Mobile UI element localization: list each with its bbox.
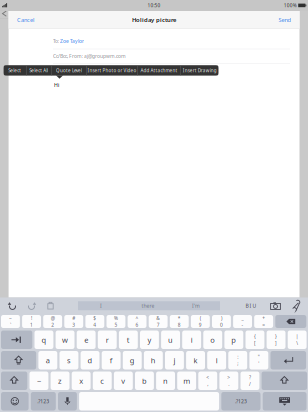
button[interactable]: !	[22, 315, 41, 328]
button[interactable]: r	[98, 330, 117, 349]
button[interactable]: .?123	[221, 392, 260, 410]
button[interactable]: %	[106, 315, 125, 328]
staticText: _	[241, 315, 243, 321]
staticText: Insert Drawing	[183, 67, 217, 73]
button[interactable]: Cancel	[12, 11, 40, 28]
button[interactable]: n	[156, 371, 175, 390]
button[interactable]: I	[78, 301, 124, 310]
button[interactable]	[270, 351, 306, 369]
staticText: ;	[237, 360, 238, 367]
button[interactable]: k	[186, 351, 205, 369]
button[interactable]: Insert Photo or Video	[87, 65, 137, 76]
button[interactable]: Select All	[26, 65, 51, 76]
button[interactable]: t	[119, 330, 138, 349]
staticText: [	[254, 340, 256, 346]
button[interactable]: Insert photo	[269, 299, 282, 312]
button[interactable]: a	[38, 351, 57, 369]
button[interactable]: _	[233, 315, 252, 328]
button[interactable]: #	[64, 315, 83, 328]
button[interactable]: {	[245, 330, 264, 349]
button[interactable]: <	[198, 371, 217, 390]
button[interactable]: d	[81, 351, 99, 369]
button[interactable]: Attach file	[289, 299, 302, 312]
button[interactable]: p	[224, 330, 243, 349]
button[interactable]	[1, 371, 27, 390]
staticText: t	[127, 335, 130, 345]
button[interactable]: Bold italic underline	[241, 299, 261, 312]
button[interactable]: Add Attachment	[137, 65, 180, 76]
button[interactable]	[1, 351, 36, 369]
button[interactable]: :	[228, 351, 247, 369]
button[interactable]: Redo	[25, 299, 38, 312]
button[interactable]: Send	[272, 11, 296, 28]
button[interactable]: +	[254, 315, 273, 328]
button[interactable]: w	[56, 330, 74, 349]
button[interactable]: ^	[128, 315, 146, 328]
button[interactable]: j	[165, 351, 184, 369]
button[interactable]: f	[102, 351, 121, 369]
button[interactable]: $	[85, 315, 104, 328]
button[interactable]: c	[93, 371, 112, 390]
button[interactable]: i	[182, 330, 201, 349]
staticText: p	[231, 335, 236, 345]
staticText: 0	[220, 322, 223, 328]
staticText: w	[62, 335, 68, 345]
button[interactable]: *	[170, 315, 189, 328]
button[interactable]: Quote Level	[51, 65, 86, 76]
button[interactable]: )	[212, 315, 231, 328]
button[interactable]: Undo	[6, 299, 19, 312]
button[interactable]: I'm	[172, 301, 220, 310]
staticText: y	[147, 335, 151, 345]
staticText: B I U	[245, 302, 256, 309]
button[interactable]: |	[288, 330, 307, 349]
button[interactable]: .?123	[31, 392, 56, 410]
button[interactable]: >	[219, 371, 238, 390]
button[interactable]: v	[114, 371, 133, 390]
staticText: v	[121, 376, 125, 386]
button[interactable]: ~	[29, 371, 48, 390]
button[interactable]: there	[124, 301, 172, 310]
button[interactable]: z	[51, 371, 69, 390]
button[interactable]: u	[161, 330, 180, 349]
staticText: aj@groupwm.com	[84, 53, 126, 59]
staticText: |	[296, 333, 299, 340]
button[interactable]	[263, 392, 306, 410]
button[interactable]: "	[249, 351, 268, 369]
button[interactable]	[275, 315, 306, 328]
button[interactable]	[58, 392, 77, 410]
button[interactable]: &	[149, 315, 168, 328]
button[interactable]: b	[135, 371, 154, 390]
staticText: d	[87, 355, 92, 365]
button[interactable]: e	[77, 330, 96, 349]
button[interactable]	[1, 392, 29, 410]
button[interactable]: y	[140, 330, 159, 349]
button[interactable]: x	[72, 371, 91, 390]
button[interactable]: Insert Drawing	[181, 65, 218, 76]
staticText: Zoe Taylor	[60, 38, 84, 44]
button[interactable]: g	[123, 351, 142, 369]
button[interactable]	[1, 330, 32, 349]
button[interactable]: @	[43, 315, 62, 328]
staticText: j	[173, 355, 175, 365]
button[interactable]: q	[34, 330, 53, 349]
staticText: <	[206, 374, 209, 381]
button[interactable]: s	[59, 351, 78, 369]
button[interactable]: ~	[1, 315, 20, 328]
button[interactable]: Paste	[44, 299, 57, 312]
button[interactable]: l	[207, 351, 226, 369]
button[interactable]: Select	[4, 65, 26, 76]
button[interactable]	[262, 371, 307, 390]
button[interactable]: m	[177, 371, 196, 390]
button[interactable]: o	[203, 330, 222, 349]
staticText: .?123	[37, 398, 49, 405]
staticText: &	[156, 315, 160, 321]
staticText: m	[183, 376, 190, 386]
button[interactable]: ?	[240, 371, 259, 390]
staticText: 10:50	[147, 2, 160, 9]
button[interactable]: (	[191, 315, 210, 328]
staticText: e	[84, 335, 88, 345]
button[interactable]: h	[144, 351, 163, 369]
staticText: "	[258, 354, 260, 360]
button[interactable]: }	[267, 330, 285, 349]
